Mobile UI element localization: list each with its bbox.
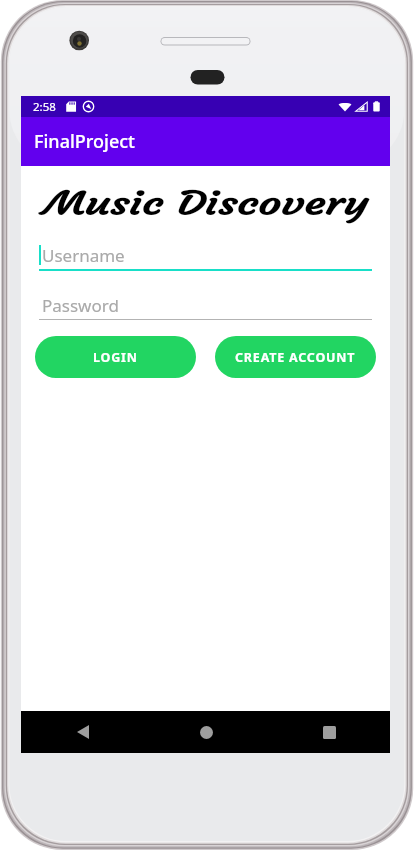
staticText: Password [42,294,119,315]
staticText: Username [42,244,125,265]
button[interactable]: Password [39,294,372,315]
staticText: CREATE ACCOUNT [235,349,356,366]
staticText: Music Discovery [21,185,390,223]
staticText: LOGIN [93,349,138,366]
button[interactable]: Home [185,711,227,753]
staticText: 2:58 [33,99,56,115]
staticText: FinalProject [34,129,135,154]
button[interactable]: Username [39,244,372,265]
button[interactable]: LOGIN [35,336,196,378]
button[interactable]: CREATE ACCOUNT [215,336,376,378]
button[interactable]: Back [62,711,104,753]
button[interactable]: Recents [308,711,350,753]
